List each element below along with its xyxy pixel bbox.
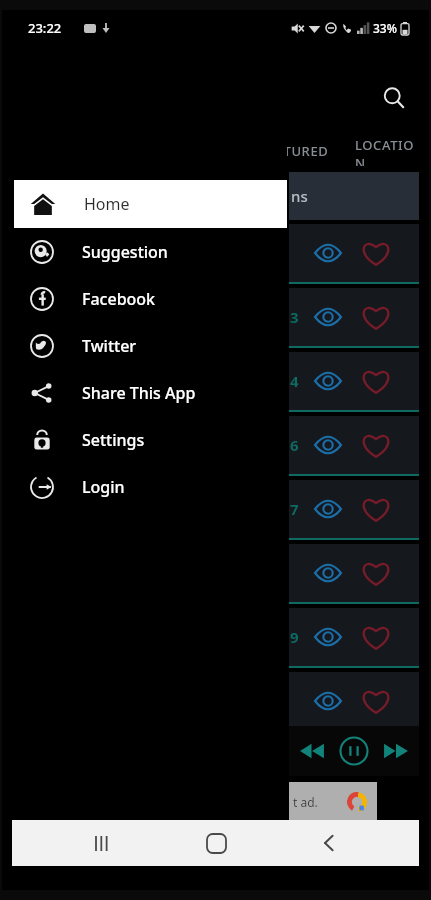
staticText: t ad. [293,794,318,810]
button[interactable]: Share This App [2,369,287,416]
button[interactable]: t ad. [289,782,377,822]
button[interactable] [289,544,419,604]
staticText: Facebook [82,288,156,310]
button[interactable]: 9 [289,608,419,668]
button[interactable]: Forward [381,736,411,766]
button[interactable]: Suggestion [2,228,287,275]
staticText: 3 [290,307,299,327]
button[interactable]: FEATURED [254,142,335,160]
button[interactable] [289,672,419,732]
button[interactable]: 6 [289,416,419,476]
button[interactable]: Pause [337,734,371,768]
button[interactable]: Home [192,820,240,866]
button[interactable]: Home [14,180,287,228]
button[interactable]: Settings [2,416,287,463]
staticText: Suggestion [82,241,168,263]
staticText: 23:22 [28,19,62,37]
staticText: FEATURED [260,142,329,160]
button[interactable]: Recents [78,820,126,866]
button[interactable]: LOCATION [349,136,429,166]
button[interactable] [289,224,419,284]
button[interactable]: Login [2,463,287,510]
button[interactable]: Back [305,820,353,866]
staticText: Home [84,193,130,215]
staticText: 33% [373,20,397,36]
staticText: 4 [290,371,299,391]
staticText: ns [291,186,308,206]
button[interactable]: Facebook [2,275,287,322]
button[interactable]: 3 [289,288,419,348]
staticText: Share This App [82,382,196,404]
button[interactable]: Search [374,78,414,118]
staticText: 6 [290,435,299,455]
staticText: 7 [290,499,299,519]
staticText: 9 [290,627,299,647]
staticText: Settings [82,429,145,451]
staticText: LOCATION [355,136,423,166]
button[interactable]: 7 [289,480,419,540]
button[interactable]: Rewind [297,736,327,766]
staticText: Twitter [82,335,137,357]
button[interactable]: 4 [289,352,419,412]
button[interactable]: Twitter [2,322,287,369]
staticText: Login [82,476,125,498]
